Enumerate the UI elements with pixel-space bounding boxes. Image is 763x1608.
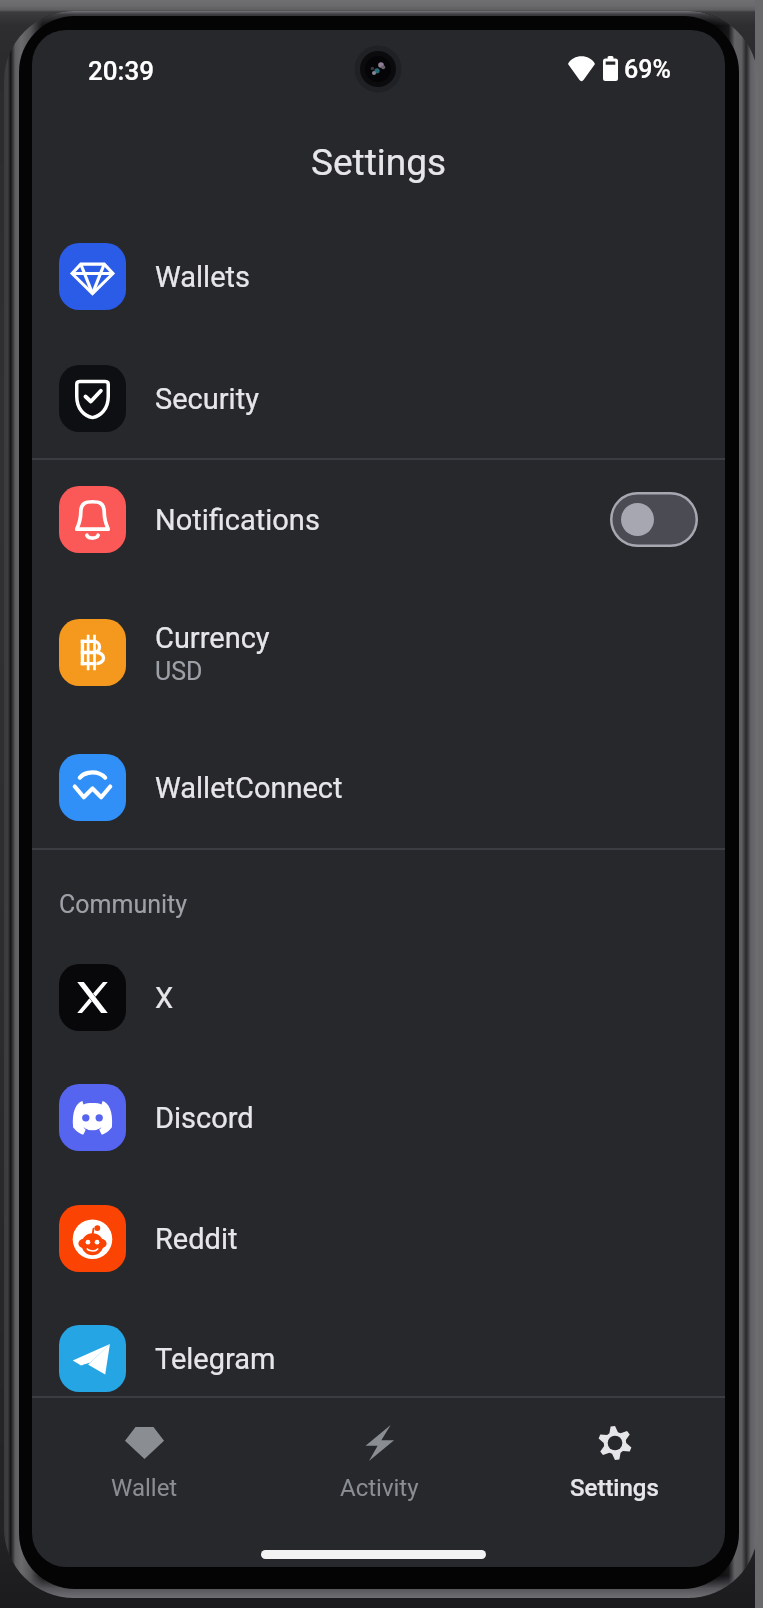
button[interactable]: WalletConnect: [32, 727, 725, 848]
button[interactable]: Wallets: [32, 216, 725, 337]
staticText: Settings: [311, 141, 447, 184]
staticText: WalletConnect: [155, 771, 343, 805]
staticText: X: [155, 981, 174, 1015]
staticText: Settings: [570, 1474, 659, 1502]
staticText: Notifications: [155, 503, 320, 537]
staticText: Community: [59, 890, 188, 919]
button[interactable]: Notifications: [32, 459, 725, 580]
staticText: USD: [155, 657, 203, 686]
staticText: Currency: [155, 621, 270, 655]
button[interactable]: Discord: [32, 1057, 725, 1178]
staticText: Security: [155, 382, 259, 416]
button[interactable]: X: [32, 937, 725, 1058]
button[interactable]: Telegram: [32, 1298, 725, 1419]
button[interactable]: Currency: [32, 592, 725, 713]
staticText: 69%: [624, 55, 671, 84]
button[interactable]: Reddit: [32, 1178, 725, 1299]
staticText: Activity: [340, 1474, 419, 1502]
button[interactable]: Settings: [497, 1401, 725, 1525]
button[interactable]: Toggle notifications: [610, 492, 698, 547]
staticText: Reddit: [155, 1222, 238, 1256]
button[interactable]: Security: [32, 338, 725, 459]
button[interactable]: Wallet: [32, 1401, 262, 1525]
staticText: Discord: [155, 1101, 254, 1135]
staticText: Wallet: [111, 1474, 178, 1502]
button[interactable]: Activity: [262, 1401, 497, 1525]
staticText: Telegram: [155, 1342, 276, 1376]
staticText: 20:39: [88, 56, 154, 86]
staticText: Wallets: [155, 260, 250, 294]
